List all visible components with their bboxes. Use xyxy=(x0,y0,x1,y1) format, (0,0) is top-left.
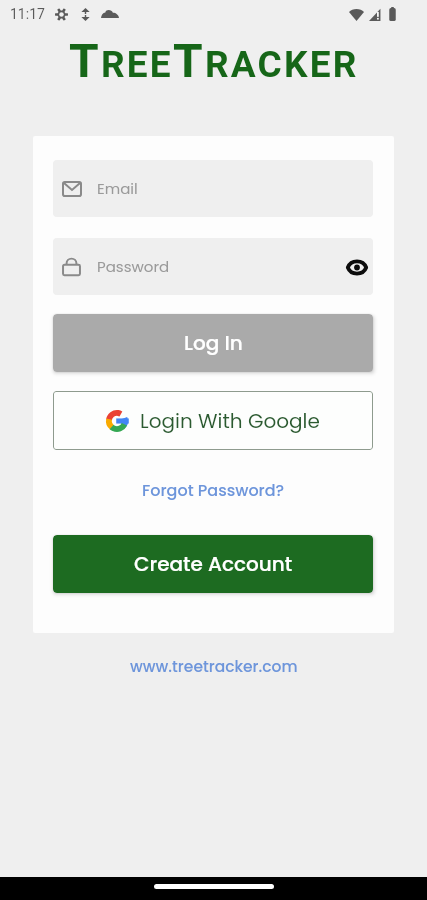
staticText: Email xyxy=(97,178,138,199)
button[interactable]: Password xyxy=(53,238,373,295)
button[interactable]: Show password xyxy=(340,247,373,287)
staticText: 11:17 xyxy=(10,6,45,22)
staticText: Login With Google xyxy=(140,407,320,435)
staticText: T xyxy=(173,33,205,77)
button[interactable]: Create Account xyxy=(53,535,373,593)
staticText: Forgot Password? xyxy=(142,479,285,501)
button[interactable]: Log In xyxy=(53,314,373,372)
staticText: REE xyxy=(101,43,173,86)
button[interactable]: Forgot Password? xyxy=(53,464,373,515)
button[interactable]: www.treetracker.com xyxy=(130,656,298,678)
staticText: Log In xyxy=(184,329,243,357)
staticText: Create Account xyxy=(134,550,293,578)
staticText: RACKER xyxy=(205,43,359,86)
button[interactable]: Login With Google xyxy=(53,391,373,450)
staticText: T xyxy=(69,33,101,77)
staticText: Password xyxy=(97,256,170,277)
button[interactable]: Email xyxy=(53,160,373,217)
